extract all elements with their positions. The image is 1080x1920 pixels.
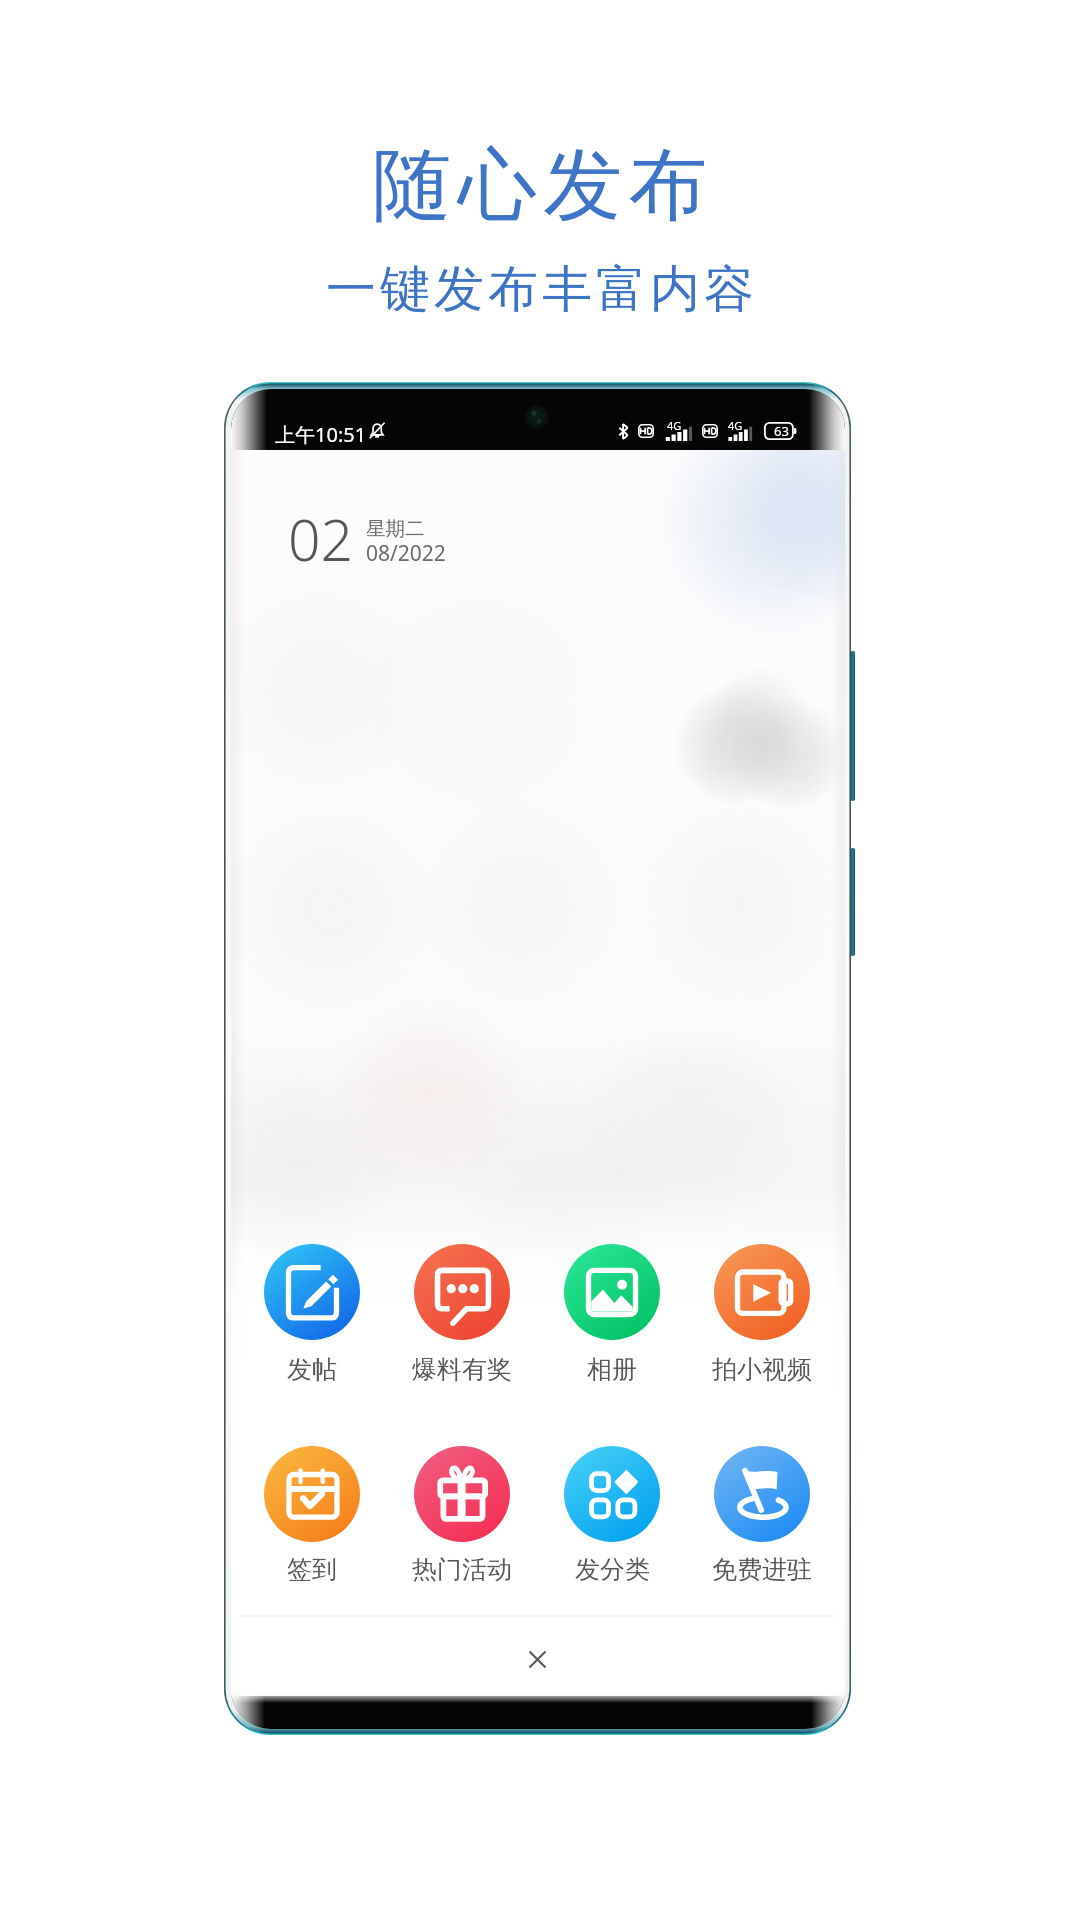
staticText: 发帖 — [287, 1354, 337, 1385]
staticText: 热门活动 — [412, 1554, 512, 1585]
staticText: 签到 — [287, 1554, 337, 1585]
staticText: 拍小视频 — [712, 1354, 812, 1385]
button[interactable]: 免费进驻 — [700, 1440, 824, 1588]
button[interactable]: 热门活动 — [400, 1440, 524, 1588]
staticText: 发分类 — [575, 1554, 650, 1585]
button[interactable]: 拍小视频 — [700, 1238, 824, 1386]
staticText: 一键发布丰富内容 — [324, 258, 756, 321]
button[interactable]: Close — [505, 1627, 569, 1691]
staticText: 爆料有奖 — [412, 1354, 512, 1385]
staticText: 4G — [667, 418, 682, 433]
button[interactable]: 签到 — [250, 1440, 374, 1588]
staticText: 63 — [774, 422, 789, 440]
button[interactable]: 发帖 — [250, 1238, 374, 1386]
staticText: 免费进驻 — [712, 1554, 812, 1585]
staticText: 02 — [288, 500, 354, 578]
staticText: 4G — [728, 418, 743, 433]
staticText: 08/2022 — [366, 539, 446, 568]
button[interactable]: 爆料有奖 — [400, 1238, 524, 1386]
staticText: 星期二 — [366, 516, 425, 541]
staticText: 随心发布 — [369, 136, 711, 236]
staticText: 上午10:51 — [275, 421, 367, 448]
button[interactable]: 发分类 — [550, 1440, 674, 1588]
staticText: 相册 — [587, 1354, 637, 1385]
button[interactable]: 相册 — [550, 1238, 674, 1386]
